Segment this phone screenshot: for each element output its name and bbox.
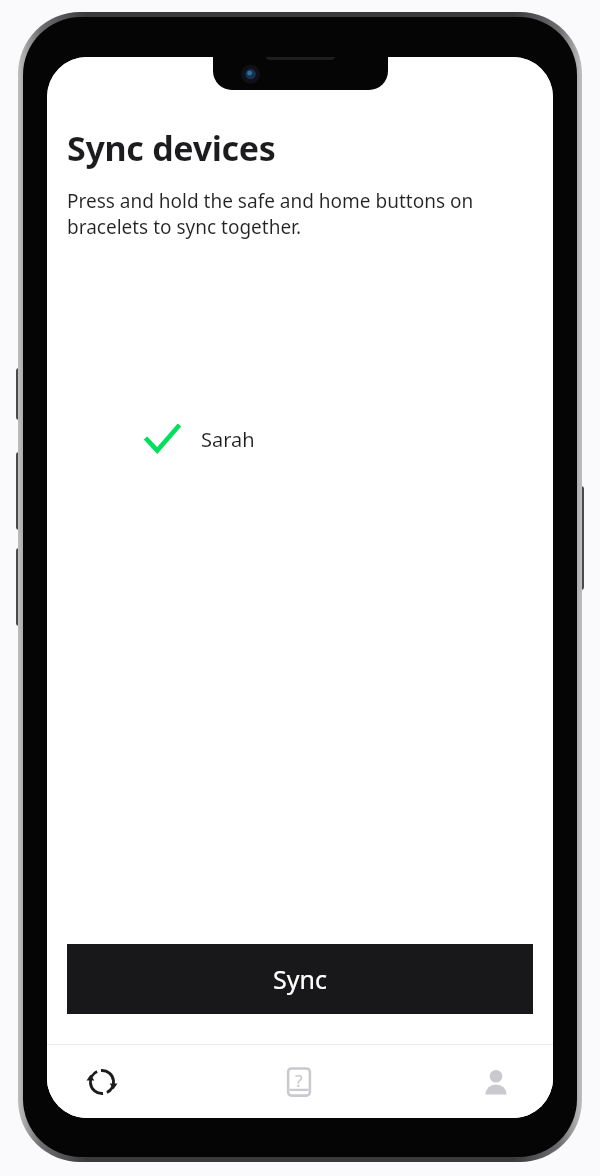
staticText: Sync <box>273 962 327 996</box>
button[interactable]: Profile <box>465 1051 527 1113</box>
staticText: Press and hold the safe and home buttons… <box>67 188 535 239</box>
staticText: Sarah <box>201 426 255 453</box>
staticText: Sync devices <box>67 125 276 171</box>
button[interactable]: Manual <box>268 1051 330 1113</box>
button[interactable]: Sync <box>67 944 533 1014</box>
button[interactable]: Sarah <box>47 414 553 464</box>
staticText: ? <box>295 1069 303 1092</box>
button[interactable]: Sync <box>71 1051 133 1113</box>
